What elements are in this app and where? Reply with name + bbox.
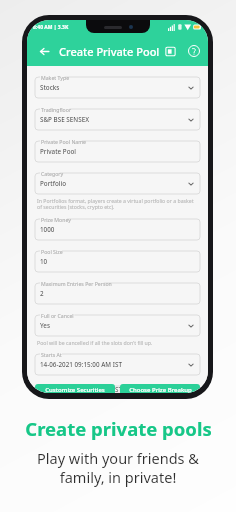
staticText: Choose Prize Breakup <box>129 386 192 393</box>
staticText: Maximum Entries Per Person <box>41 280 112 287</box>
staticText: Pool will be cancelled if all the slots … <box>37 339 153 346</box>
staticText: In Portfolios format, players create a v… <box>37 197 198 211</box>
staticText: 2 <box>40 289 44 298</box>
staticText: Private Pool Name <box>41 138 87 145</box>
staticText: Portfolio <box>40 179 67 188</box>
staticText: Tradingfloor <box>41 106 72 113</box>
button[interactable]: Choose Prize Breakup <box>120 384 200 393</box>
staticText: 16-06-2021 09:15:00 AM IST <box>40 385 122 393</box>
button[interactable]: Maximum Entries Per Person <box>35 279 200 304</box>
button[interactable]: Help <box>186 41 202 61</box>
button[interactable]: Category <box>35 169 200 194</box>
staticText: Create private pools <box>25 416 212 441</box>
staticText: Create Private Pool <box>59 44 160 59</box>
staticText: Private Pool <box>40 147 77 156</box>
staticText: Pool Size <box>41 248 63 255</box>
staticText: 8:40 AM | 3.3K <box>33 24 69 31</box>
button[interactable]: Customize Securities <box>35 384 115 393</box>
staticText: Customize Securities <box>45 386 105 393</box>
button[interactable]: Pool Size <box>35 247 200 272</box>
button[interactable]: Tradingfloor <box>35 105 200 130</box>
button[interactable]: Rules <box>160 41 180 61</box>
button[interactable]: Maket Type <box>35 73 200 98</box>
button[interactable]: Full or Cancel <box>35 311 200 336</box>
staticText: Starts At <box>41 351 62 358</box>
button[interactable]: Private Pool Name <box>35 137 200 162</box>
staticText: Maket Type <box>41 74 70 81</box>
staticText: Category <box>41 170 64 177</box>
staticText: Play with your friends & family, in priv… <box>0 448 236 487</box>
staticText: 10 <box>40 257 48 266</box>
button[interactable]: Prize Money <box>35 215 200 240</box>
staticText: S&P BSE SENSEX <box>40 115 89 124</box>
staticText: Stocks <box>40 83 60 92</box>
button[interactable]: Starts At <box>35 350 200 375</box>
staticText: Yes <box>40 321 51 330</box>
staticText: Prize Money <box>41 216 71 223</box>
staticText: Ends At <box>41 383 60 390</box>
button[interactable]: Back <box>33 40 55 62</box>
button[interactable]: Ends At <box>35 382 200 393</box>
staticText: 1000 <box>40 225 55 234</box>
staticText: Full or Cancel <box>41 312 74 319</box>
staticText: 14-06-2021 09:15:00 AM IST <box>40 360 122 369</box>
